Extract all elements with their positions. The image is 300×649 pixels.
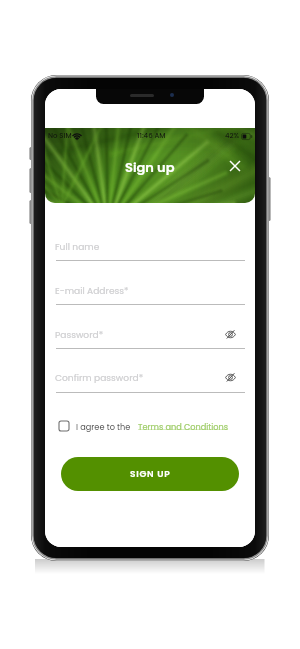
button[interactable]: SIGN UP	[61, 457, 239, 491]
staticText: No SIM	[48, 131, 72, 141]
staticText: E-mail Address*	[55, 284, 129, 297]
staticText: Password*	[55, 328, 104, 341]
staticText: Full name	[55, 240, 100, 253]
button[interactable]: Show password	[220, 367, 240, 387]
staticText: I agree to the	[76, 421, 131, 432]
staticText: 11:46 AM	[137, 131, 166, 141]
staticText: 42%	[225, 131, 240, 141]
button[interactable]: I agree to the terms checkbox	[59, 421, 69, 431]
staticText: Confirm password*	[55, 371, 144, 384]
staticText: Sign up	[125, 158, 175, 176]
button[interactable]: Show password	[220, 324, 240, 344]
button[interactable]: Terms and Conditions	[138, 421, 229, 432]
button[interactable]: Close	[223, 154, 247, 178]
staticText: SIGN UP	[130, 468, 171, 481]
